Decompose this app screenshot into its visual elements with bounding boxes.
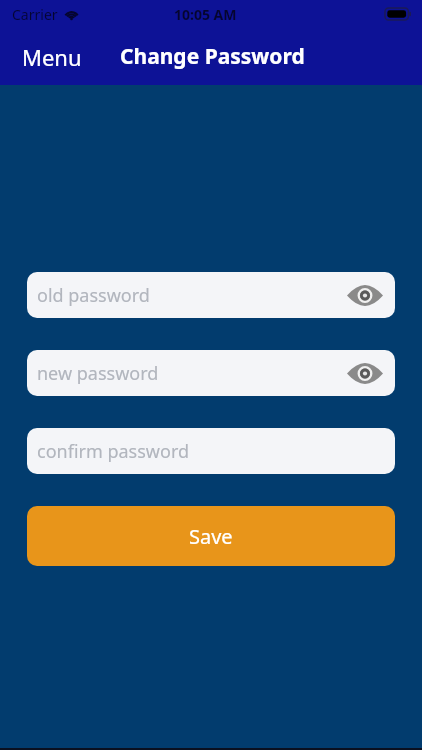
staticText: confirm password	[37, 439, 190, 464]
staticText: Menu	[22, 42, 82, 72]
staticText: Save	[189, 523, 233, 550]
staticText: Carrier	[12, 5, 58, 24]
staticText: new password	[37, 361, 159, 386]
button[interactable]: confirm password	[27, 428, 395, 474]
button[interactable]: old password	[27, 272, 395, 318]
staticText: old password	[37, 283, 150, 308]
staticText: Change Password	[120, 42, 305, 71]
button[interactable]: new password	[27, 350, 395, 396]
button[interactable]: Show password	[347, 362, 383, 384]
button[interactable]: Save	[27, 506, 395, 566]
staticText: 10:05 AM	[174, 5, 237, 24]
button[interactable]: Show password	[347, 284, 383, 306]
button[interactable]: Menu	[0, 34, 96, 80]
